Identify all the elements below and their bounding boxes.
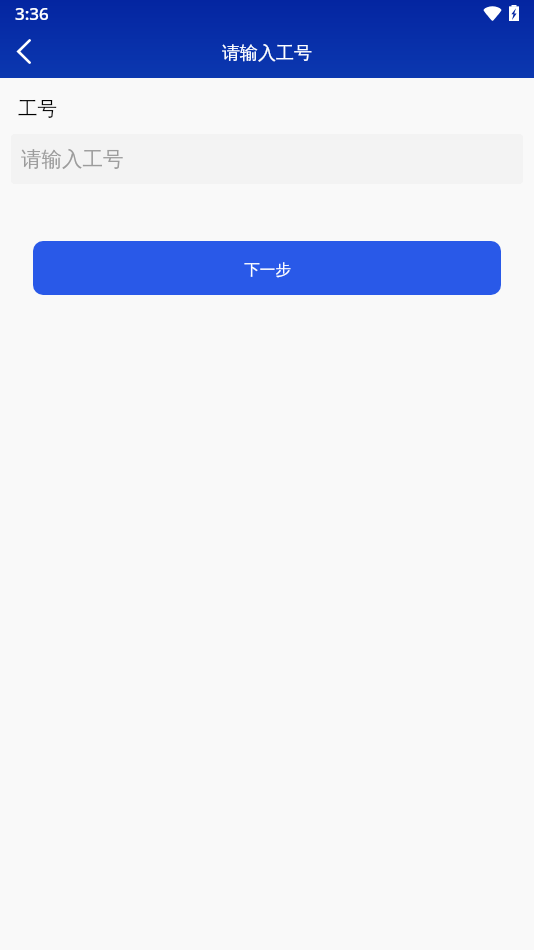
button[interactable]: 下一步 [33, 241, 501, 295]
staticText: 请输入工号 [222, 42, 312, 65]
button[interactable]: Back [0, 28, 48, 78]
staticText: 工号 [18, 96, 57, 121]
button[interactable]: 请输入工号 [11, 134, 523, 184]
staticText: 请输入工号 [21, 146, 124, 172]
staticText: 下一步 [244, 260, 291, 280]
staticText: 3:36 [15, 2, 49, 25]
